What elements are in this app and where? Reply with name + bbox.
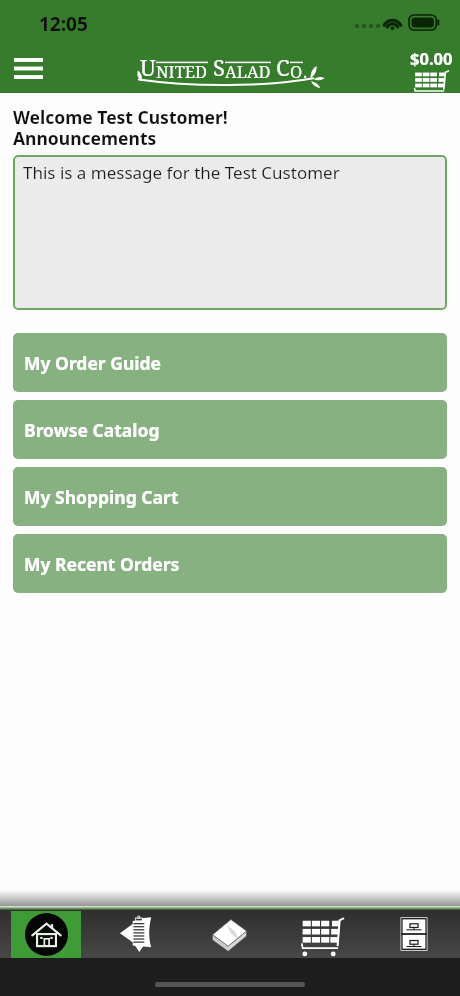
button[interactable]: Order Guide <box>92 910 184 958</box>
staticText: This is a message for the Test Customer <box>23 161 340 184</box>
staticText: Welcome Test Customer! Announcements <box>13 105 228 150</box>
button[interactable]: Shopping cart <box>276 910 368 958</box>
button[interactable]: Home <box>0 910 92 958</box>
staticText: NITED <box>156 60 208 82</box>
staticText: . <box>303 60 308 82</box>
staticText: 12:05 <box>39 11 88 37</box>
staticText: My Shopping Cart <box>24 485 179 509</box>
button[interactable]: Menu <box>0 44 56 93</box>
staticText: S <box>213 52 225 82</box>
staticText: C <box>276 52 290 82</box>
button[interactable]: Shopping cart, $0.00 <box>402 44 460 93</box>
button[interactable]: My Order Guide <box>13 333 447 392</box>
staticText: My Recent Orders <box>24 552 180 576</box>
button[interactable]: Browse Catalog <box>13 400 447 459</box>
staticText: $0.00 <box>410 47 453 69</box>
staticText: O <box>290 60 303 82</box>
button[interactable]: My Recent Orders <box>13 534 447 593</box>
staticText: ALAD <box>225 60 271 82</box>
button[interactable]: My Shopping Cart <box>13 467 447 526</box>
staticText: My Order Guide <box>24 351 162 375</box>
button[interactable]: Invoices <box>368 910 460 958</box>
button[interactable]: Catalog <box>184 910 276 958</box>
staticText: U <box>140 52 156 82</box>
staticText: Browse Catalog <box>24 418 160 442</box>
